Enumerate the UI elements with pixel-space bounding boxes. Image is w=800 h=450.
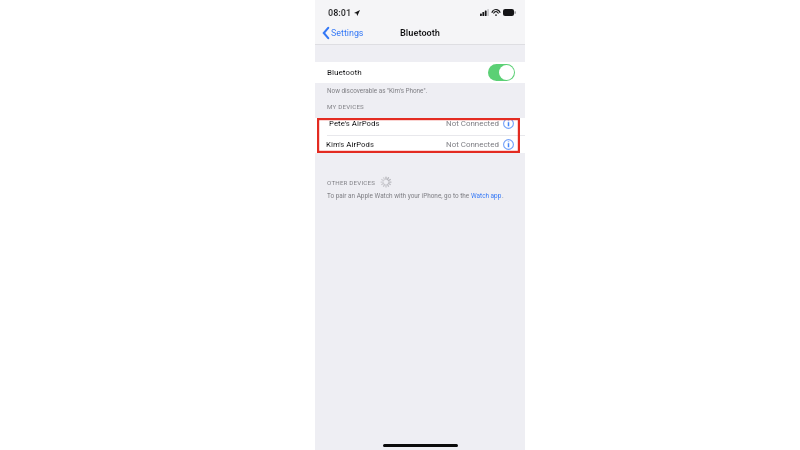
staticText: 08:01 — [328, 8, 352, 19]
staticText: Pete's AirPods — [329, 119, 380, 128]
button[interactable]: Bluetooth on — [488, 64, 515, 81]
staticText: Bluetooth — [400, 27, 441, 38]
staticText: Not Connected — [446, 119, 499, 128]
button[interactable]: Pete's AirPods — [315, 116, 525, 131]
button[interactable]: Settings — [320, 25, 367, 41]
button[interactable]: Watch app — [471, 192, 502, 200]
staticText: . — [502, 192, 504, 200]
staticText: To pair an Apple Watch with your iPhone,… — [327, 192, 471, 200]
staticText: OTHER DEVICES — [327, 179, 376, 186]
staticText: MY DEVICES — [327, 103, 364, 110]
staticText: Kim's AirPods — [326, 140, 374, 149]
button[interactable]: Kim's AirPods — [315, 137, 525, 152]
button[interactable]: More info — [503, 118, 514, 129]
staticText: Bluetooth — [327, 68, 362, 77]
button[interactable]: More info — [503, 139, 514, 150]
staticText: Settings — [331, 28, 364, 38]
staticText: Now discoverable as "Kim's Phone". — [327, 87, 428, 94]
staticText: Not Connected — [446, 140, 499, 149]
button[interactable]: Bluetooth — [315, 62, 525, 83]
